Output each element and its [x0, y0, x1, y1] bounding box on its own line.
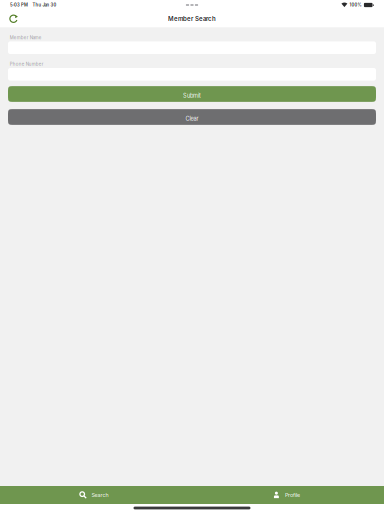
button[interactable]: Clear [8, 109, 376, 125]
button[interactable]: Refresh [4, 10, 23, 27]
staticText: 100% [349, 2, 361, 8]
staticText: Member Name [10, 35, 42, 40]
button[interactable]: Submit [8, 86, 376, 102]
staticText: Submit [183, 92, 201, 99]
staticText: Clear [185, 115, 198, 122]
staticText: Search [91, 492, 108, 498]
staticText: 5:03 PM [10, 2, 28, 8]
button[interactable]: Search [0, 486, 192, 504]
staticText: Phone Number [10, 62, 44, 67]
button[interactable]: Profile [192, 486, 384, 504]
staticText: Profile [285, 492, 300, 498]
staticText: Member Search [168, 15, 216, 22]
staticText: Thu Jan 30 [32, 2, 56, 8]
